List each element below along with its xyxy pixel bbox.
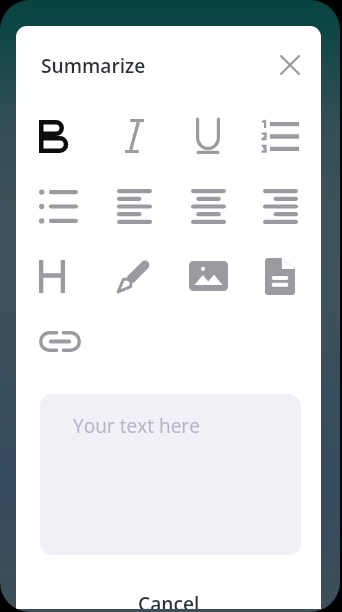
button[interactable]: Numbered list <box>256 101 304 171</box>
button[interactable]: Underline <box>184 101 232 171</box>
button[interactable]: Link <box>34 311 82 371</box>
staticText: Cancel <box>138 590 200 609</box>
button[interactable]: Align center <box>184 171 232 241</box>
button[interactable]: Align right <box>256 171 304 241</box>
button[interactable]: Draw <box>110 241 158 311</box>
button[interactable]: Align left <box>110 171 158 241</box>
button[interactable]: Cancel <box>16 577 321 609</box>
button[interactable]: Image <box>184 241 232 311</box>
staticText: Summarize <box>41 52 146 78</box>
staticText: Your text here <box>73 413 200 439</box>
button[interactable]: Heading <box>34 241 82 311</box>
button[interactable]: Bold <box>34 101 82 171</box>
button[interactable]: Bulleted list <box>34 171 82 241</box>
button[interactable]: Document <box>256 241 304 311</box>
button[interactable]: Your text here <box>40 394 301 555</box>
button[interactable]: Close <box>271 46 309 84</box>
button[interactable]: Italic <box>110 101 158 171</box>
